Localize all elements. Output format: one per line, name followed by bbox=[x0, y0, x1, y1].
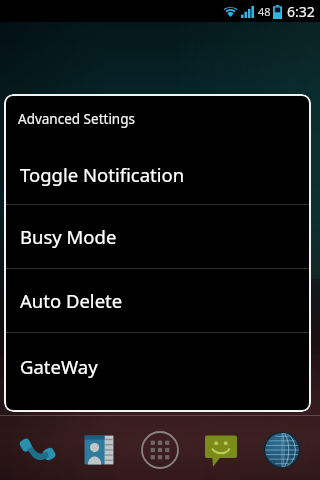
button[interactable]: Busy Mode bbox=[4, 205, 311, 268]
staticText: GateWay bbox=[20, 354, 98, 379]
button[interactable]: Apps bbox=[137, 427, 183, 473]
staticText: 6:32 bbox=[287, 2, 315, 21]
staticText: Busy Mode bbox=[20, 224, 117, 249]
button[interactable]: Browser bbox=[259, 427, 305, 473]
staticText: 48 bbox=[258, 4, 271, 19]
staticText: Auto Delete bbox=[20, 288, 123, 313]
button[interactable]: Messaging bbox=[198, 427, 244, 473]
button[interactable]: GateWay bbox=[4, 333, 311, 399]
staticText: Advanced Settings bbox=[18, 110, 135, 128]
staticText: Toggle Notification bbox=[20, 162, 185, 187]
button[interactable]: Contacts bbox=[76, 427, 122, 473]
button[interactable]: Phone bbox=[15, 427, 61, 473]
button[interactable]: Toggle Notification bbox=[4, 144, 311, 204]
button[interactable]: Auto Delete bbox=[4, 269, 311, 332]
